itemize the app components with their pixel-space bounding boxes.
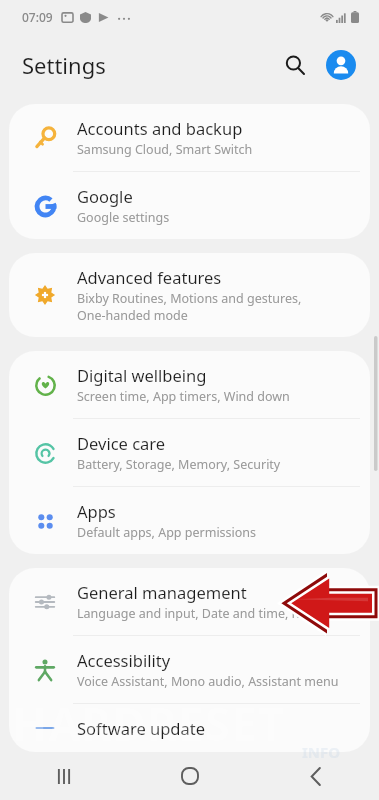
staticText: Bixby Routines, Motions and gestures, On… xyxy=(77,290,302,324)
staticText: Digital wellbeing xyxy=(77,364,207,386)
staticText: Voice Assistant, Mono audio, Assistant m… xyxy=(77,673,339,690)
staticText: Language and input, Date and time, Reset xyxy=(77,605,324,622)
staticText: General management xyxy=(77,581,247,603)
button[interactable]: Advanced features xyxy=(9,253,370,337)
button[interactable]: Home xyxy=(127,752,253,800)
button[interactable]: Google xyxy=(9,172,370,239)
staticText: Default apps, App permissions xyxy=(77,524,257,541)
staticText: Device care xyxy=(77,432,166,454)
staticText: Screen time, App timers, Wind down xyxy=(77,388,290,405)
staticText: Samsung Cloud, Smart Switch xyxy=(77,141,253,158)
staticText: Battery, Storage, Memory, Security xyxy=(77,456,281,473)
button[interactable]: Search xyxy=(275,45,315,85)
button[interactable]: Accessibility xyxy=(9,636,370,703)
button[interactable]: Account xyxy=(321,45,361,85)
button[interactable]: Device care xyxy=(9,419,370,486)
staticText: Google xyxy=(77,185,133,207)
button[interactable]: Back xyxy=(253,752,379,800)
button[interactable]: Apps xyxy=(9,487,370,554)
staticText: Apps xyxy=(77,500,116,522)
button[interactable]: Software update xyxy=(9,704,370,752)
button[interactable]: Recent apps xyxy=(0,752,127,800)
staticText: Accounts and backup xyxy=(77,117,243,139)
button[interactable]: General management xyxy=(9,568,370,635)
staticText: INFO xyxy=(302,742,341,762)
button[interactable]: Accounts and backup xyxy=(9,104,370,171)
staticText: Advanced features xyxy=(77,266,222,288)
staticText: Settings xyxy=(22,50,106,80)
staticText: Accessibility xyxy=(77,649,171,671)
button[interactable]: Digital wellbeing xyxy=(9,351,370,418)
staticText: HARDRESET xyxy=(12,692,286,755)
staticText: Software update xyxy=(77,717,205,739)
staticText: 07:09 xyxy=(22,9,53,25)
staticText: Google settings xyxy=(77,209,170,226)
